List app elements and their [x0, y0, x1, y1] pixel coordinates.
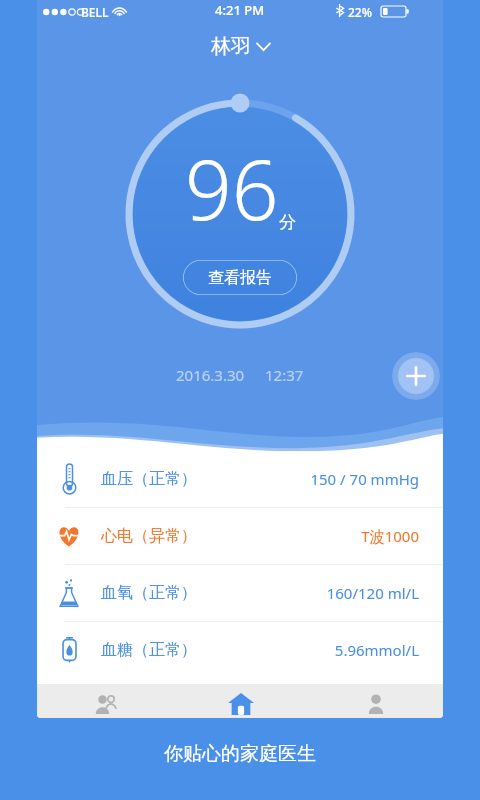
staticText: 血压（正常） [101, 469, 197, 489]
button[interactable]: 我的 [308, 684, 443, 718]
staticText: 血氧（正常） [101, 583, 197, 603]
staticText: 查看报告 [208, 268, 272, 288]
staticText: 心电（异常） [101, 526, 197, 546]
staticText: 96 [185, 132, 279, 244]
staticText: T波1000 [361, 526, 419, 546]
staticText: 12:37 [265, 365, 304, 385]
button[interactable]: 成员 [37, 684, 173, 718]
button[interactable]: 心电（异常） [37, 508, 443, 564]
staticText: 分 [279, 212, 296, 233]
staticText: 22% [348, 4, 372, 20]
button[interactable]: 血压（正常） [37, 451, 443, 507]
staticText: BELL [81, 4, 109, 20]
staticText: 4:21 PM [215, 1, 265, 19]
staticText: 160/120 ml/L [326, 583, 419, 603]
staticText: 你贴心的家庭医生 [164, 742, 316, 766]
button[interactable]: 查看报告 [183, 260, 297, 295]
staticText: 血糖（正常） [101, 640, 197, 660]
button[interactable]: Add measurement [392, 352, 440, 400]
staticText: 林羽 [211, 34, 251, 59]
staticText: 2016.3.30 [176, 365, 245, 385]
button[interactable]: 首页 [173, 684, 308, 718]
button[interactable]: 林羽 [197, 30, 284, 63]
staticText: 150 / 70 mmHg [310, 469, 419, 489]
staticText: 5.96mmol/L [334, 640, 419, 660]
button[interactable]: 血氧（正常） [37, 565, 443, 621]
button[interactable]: 血糖（正常） [37, 622, 443, 678]
